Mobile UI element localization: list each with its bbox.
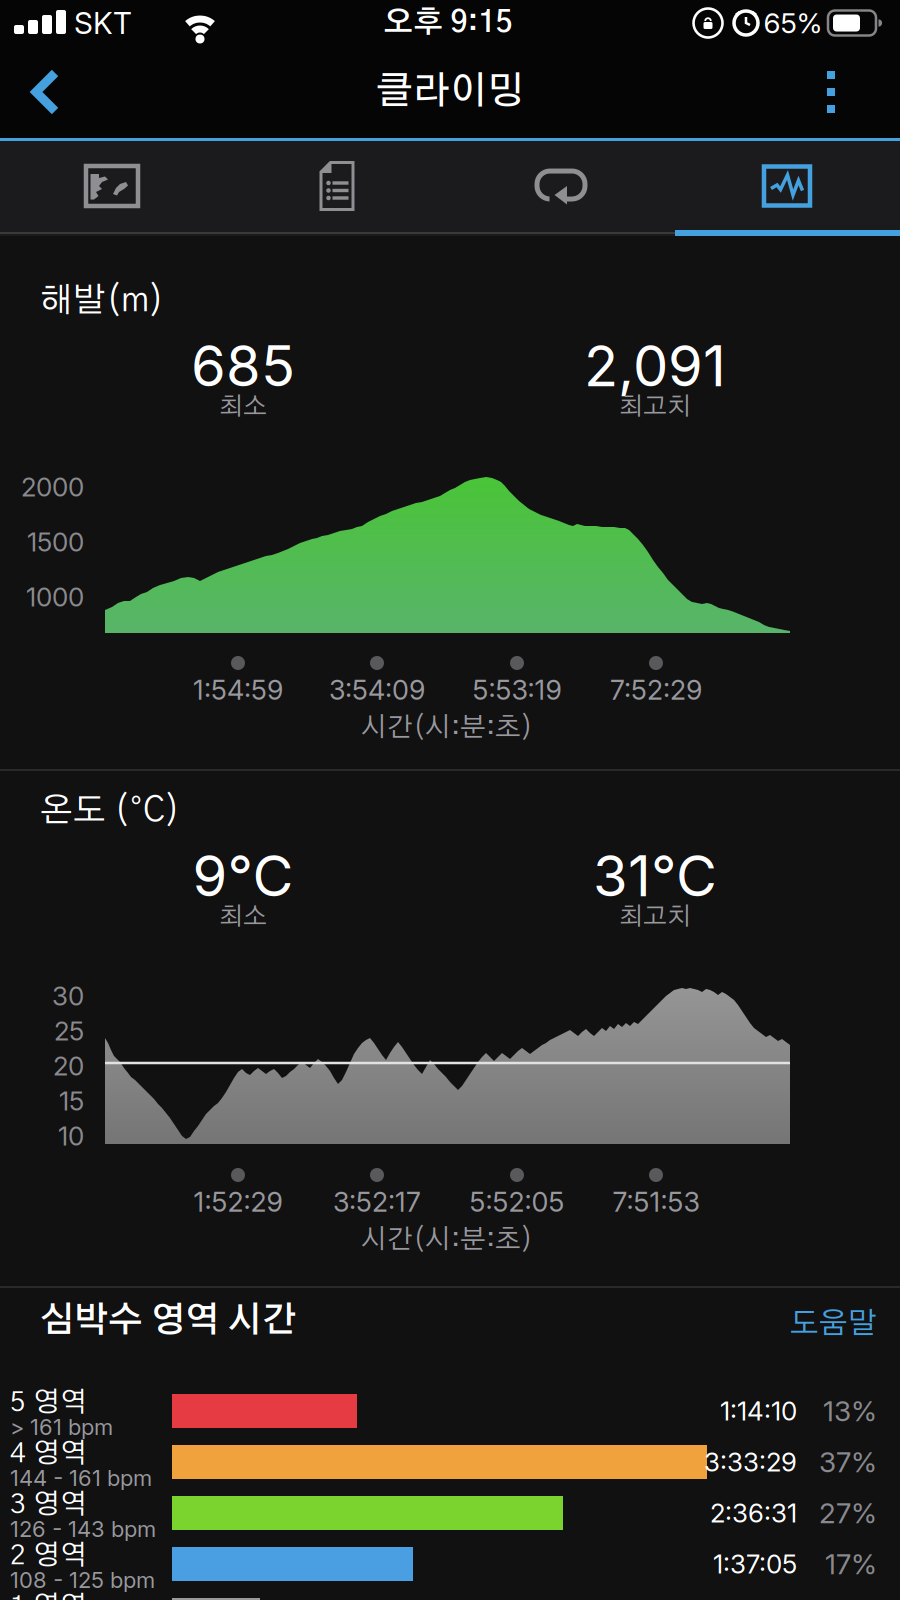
staticText: 심박수 영역 시간 <box>40 1303 296 1338</box>
staticText: 1 영역 <box>10 1593 87 1600</box>
staticText: 144 - 161 bpm <box>10 1465 152 1491</box>
staticText: 2,091 <box>584 332 726 400</box>
staticText: 7:52:29 <box>610 674 702 706</box>
staticText: 1:37:05 <box>713 1548 797 1580</box>
staticText: 클라이밍 <box>376 73 524 111</box>
staticText: 해발(m) <box>40 284 164 318</box>
staticText: 1:14:10 <box>720 1395 797 1427</box>
staticText: 126 - 143 bpm <box>10 1516 156 1542</box>
button[interactable]: 도움말 <box>737 1309 877 1339</box>
staticText: 1:54:59 <box>193 674 283 706</box>
button[interactable]: Map <box>67 150 157 222</box>
staticText: 도움말 <box>790 1309 877 1339</box>
staticText: 20 <box>53 1050 84 1082</box>
staticText: 4 영역 <box>10 1440 87 1468</box>
staticText: 5 영역 <box>10 1389 87 1417</box>
staticText: 최소 <box>219 904 267 929</box>
staticText: 3 영역 <box>10 1491 87 1519</box>
staticText: 685 <box>191 332 295 400</box>
staticText: 108 - 125 bpm <box>10 1567 155 1593</box>
staticText: 3:33:29 <box>704 1446 797 1478</box>
button[interactable]: Details <box>292 150 382 222</box>
staticText: 2 영역 <box>10 1542 87 1570</box>
staticText: 5:52:05 <box>469 1186 564 1218</box>
staticText: 시간(시:분:초) <box>361 1226 533 1253</box>
staticText: 27% <box>819 1496 877 1530</box>
staticText: 최고치 <box>619 904 691 929</box>
staticText: 17% <box>825 1547 877 1581</box>
staticText: 7:51:53 <box>612 1186 699 1218</box>
staticText: 30 <box>52 980 84 1012</box>
staticText: 25 <box>54 1015 84 1047</box>
staticText: 최소 <box>219 394 267 419</box>
staticText: 1500 <box>27 526 84 558</box>
staticText: 2:36:31 <box>710 1497 797 1529</box>
staticText: 3:54:09 <box>329 674 425 706</box>
staticText: 31°C <box>593 842 717 910</box>
button[interactable]: Back <box>29 68 63 116</box>
staticText: 온도 (°C) <box>40 794 180 828</box>
staticText: 5:53:19 <box>472 674 561 706</box>
staticText: 시간(시:분:초) <box>361 714 533 741</box>
staticText: 10 <box>58 1120 84 1152</box>
staticText: 65% <box>763 6 822 40</box>
staticText: 1:52:29 <box>193 1186 282 1218</box>
staticText: 37% <box>819 1445 877 1479</box>
button[interactable]: Charts <box>742 150 832 222</box>
staticText: 2000 <box>21 471 84 503</box>
staticText: 1000 <box>26 581 84 613</box>
staticText: SKT <box>74 5 132 41</box>
button[interactable]: Laps <box>517 152 607 224</box>
staticText: 9°C <box>192 842 293 910</box>
staticText: 15 <box>59 1085 84 1117</box>
staticText: 13% <box>823 1394 877 1428</box>
staticText: > 161 bpm <box>10 1414 113 1440</box>
staticText: 최고치 <box>619 394 691 419</box>
staticText: 오후 9:15 <box>383 8 512 38</box>
staticText: 3:52:17 <box>333 1186 421 1218</box>
button[interactable]: More options <box>826 70 836 114</box>
